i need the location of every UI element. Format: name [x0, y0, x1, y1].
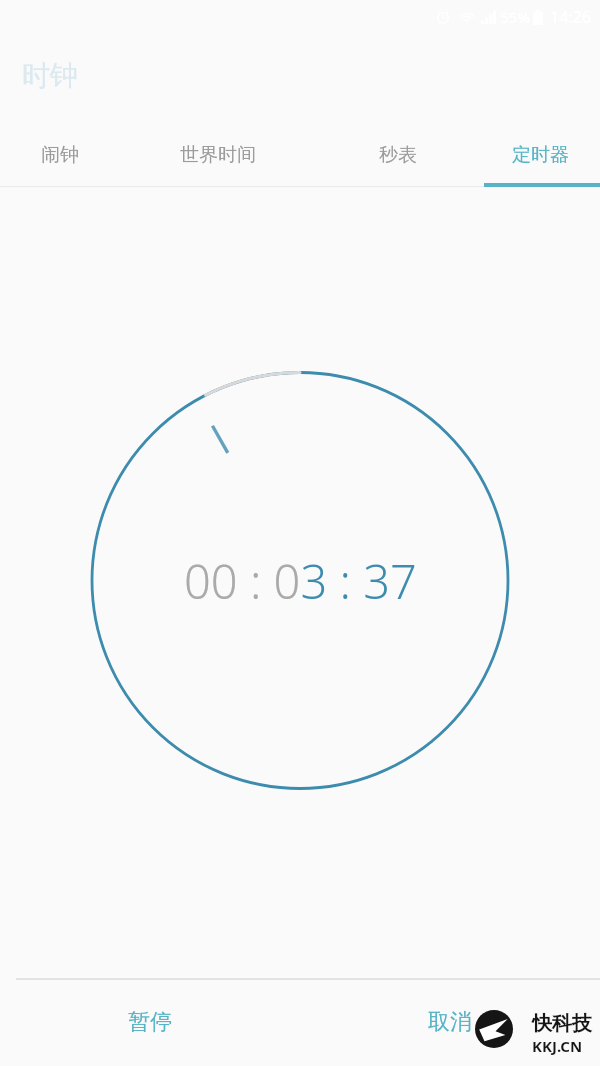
staticText: 取消: [428, 1008, 472, 1036]
button[interactable]: 世界时间: [178, 123, 258, 186]
button[interactable]: 秒表: [378, 123, 418, 186]
staticText: 00 : 03 : 37: [184, 549, 417, 613]
button[interactable]: 暂停: [0, 978, 300, 1066]
staticText: 秒表: [379, 143, 417, 167]
button[interactable]: 定时器: [510, 123, 570, 186]
staticText: KKJ.CN: [532, 1036, 583, 1056]
staticText: 世界时间: [180, 143, 256, 167]
staticText: 时钟: [22, 58, 78, 93]
button[interactable]: Timer ring: [0, 0, 600, 1066]
staticText: 闹钟: [41, 143, 79, 167]
staticText: 暂停: [128, 1008, 172, 1036]
staticText: 定时器: [512, 143, 569, 167]
button[interactable]: 取消: [300, 978, 600, 1066]
staticText: 快科技: [532, 1011, 592, 1036]
button[interactable]: 闹钟: [40, 123, 80, 186]
